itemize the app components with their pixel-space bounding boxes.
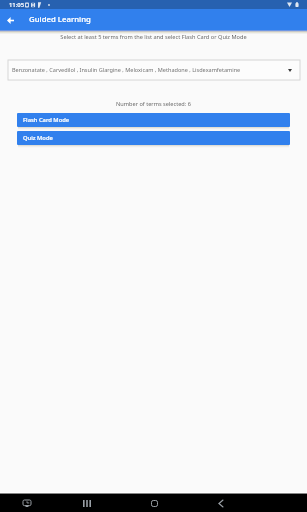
button[interactable]: Home: [143, 494, 165, 512]
staticText: 11:05: [9, 1, 25, 9]
staticText: Flash Card Mode: [23, 116, 70, 124]
staticText: Quiz Mode: [23, 134, 53, 142]
button[interactable]: Take screenshot: [16, 494, 38, 512]
staticText: Number of terms selected: 6: [0, 100, 307, 108]
staticText: Select at least 5 terms from the list an…: [0, 33, 307, 41]
staticText: Guided Learning: [29, 14, 91, 25]
button[interactable]: Back: [210, 494, 232, 512]
staticText: Benzonatate , Carvedilol , Insulin Glarg…: [12, 66, 241, 74]
button[interactable]: Back: [0, 10, 21, 31]
button[interactable]: Benzonatate , Carvedilol , Insulin Glarg…: [8, 60, 300, 80]
button[interactable]: Recent apps: [76, 494, 98, 512]
button[interactable]: Quiz Mode: [17, 131, 290, 145]
button[interactable]: Flash Card Mode: [17, 113, 290, 127]
